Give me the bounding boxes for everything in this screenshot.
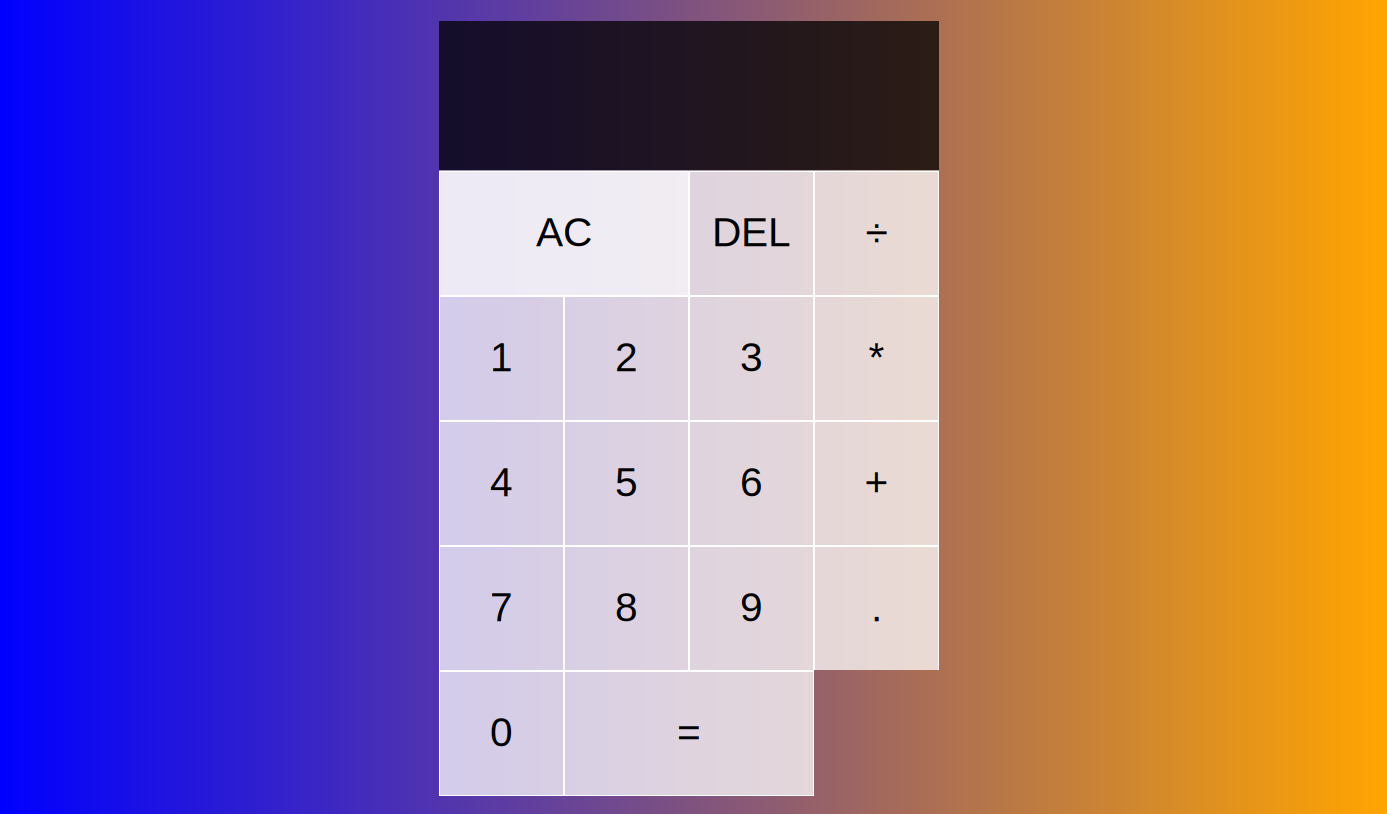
button[interactable]: 6 [690, 422, 813, 545]
staticText: + [864, 459, 888, 505]
staticText: 2 [615, 334, 638, 380]
staticText: 5 [615, 459, 638, 505]
button[interactable]: 5 [565, 422, 688, 545]
staticText: . [871, 584, 882, 630]
staticText: 1 [490, 334, 513, 380]
button[interactable]: 2 [565, 297, 688, 420]
staticText: 0 [490, 709, 513, 755]
button[interactable]: Delete [690, 172, 813, 295]
button[interactable]: Add [815, 422, 938, 545]
button[interactable]: 7 [440, 547, 563, 670]
staticText: 9 [740, 584, 763, 630]
button[interactable]: 4 [440, 422, 563, 545]
button[interactable]: Decimal point [815, 547, 938, 670]
staticText: * [868, 334, 884, 380]
staticText: 7 [490, 584, 513, 630]
staticText: DEL [712, 209, 791, 255]
button[interactable]: Divide [815, 172, 938, 295]
staticText: ÷ [865, 209, 887, 255]
staticText: AC [536, 209, 592, 255]
staticText: 8 [615, 584, 638, 630]
button[interactable]: 3 [690, 297, 813, 420]
button[interactable]: All clear [440, 172, 688, 295]
button[interactable]: 0 [440, 672, 563, 795]
button[interactable]: Multiply [815, 297, 938, 420]
staticText: 6 [740, 459, 763, 505]
staticText: = [677, 709, 701, 755]
staticText: 4 [490, 459, 513, 505]
button[interactable]: 1 [440, 297, 563, 420]
staticText: 3 [740, 334, 763, 380]
button[interactable]: 9 [690, 547, 813, 670]
button[interactable]: 8 [565, 547, 688, 670]
button[interactable]: Equals [565, 672, 813, 795]
